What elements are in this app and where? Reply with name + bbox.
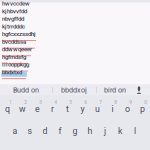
staticText: 8 — [114, 99, 117, 105]
staticText: 4 — [54, 99, 57, 105]
staticText: ddwwqeeer — [2, 46, 32, 53]
staticText: k — [118, 126, 122, 136]
staticText: r — [51, 104, 54, 114]
staticText: bbdxtxd — [2, 68, 22, 76]
staticText: 0 — [144, 99, 147, 105]
staticText: hgfmdsfg — [2, 53, 26, 60]
staticText: kjhbvvfdd — [2, 7, 27, 15]
button[interactable]: q — [0, 95, 15, 117]
staticText: f — [58, 126, 61, 136]
button[interactable]: t — [60, 95, 75, 117]
staticText: iiiooppkgg — [2, 61, 29, 68]
staticText: bird on — [104, 86, 126, 94]
button[interactable]: f — [52, 117, 67, 139]
staticText: i — [111, 104, 113, 114]
staticText: 6 — [84, 99, 87, 105]
staticText: j — [104, 126, 106, 136]
staticText: o — [125, 104, 130, 114]
button[interactable]: g — [67, 117, 82, 139]
staticText: Budd on — [13, 86, 39, 94]
button[interactable]: l — [127, 117, 142, 139]
button[interactable]: Budd on — [0, 84, 52, 95]
button[interactable]: w — [15, 95, 30, 117]
staticText: g — [72, 126, 77, 136]
staticText: 7 — [99, 99, 102, 105]
staticText: bvcddssa — [2, 38, 26, 45]
staticText: 1 — [9, 99, 12, 105]
button[interactable]: a — [7, 117, 22, 139]
button[interactable]: j — [97, 117, 112, 139]
staticText: 9 — [129, 99, 132, 105]
staticText: h — [87, 126, 92, 136]
button[interactable]: h — [82, 117, 97, 139]
button[interactable]: r — [45, 95, 60, 117]
staticText: nbvgffdd — [2, 15, 24, 22]
button[interactable]: bbddxoj — [52, 84, 96, 95]
button[interactable]: p — [135, 95, 150, 117]
button[interactable]: u — [90, 95, 105, 117]
button[interactable]: o — [120, 95, 135, 117]
staticText: 2 — [24, 99, 27, 105]
staticText: d — [42, 126, 47, 136]
staticText: q — [5, 104, 10, 114]
staticText: 5 — [69, 99, 72, 105]
button[interactable]: k — [112, 117, 127, 139]
button[interactable]: d — [37, 117, 52, 139]
staticText: 3 — [39, 99, 42, 105]
staticText: y — [80, 104, 84, 114]
staticText: l — [134, 126, 136, 136]
staticText: u — [95, 104, 100, 114]
button[interactable]: Voice input — [131, 84, 147, 95]
button[interactable]: s — [22, 117, 37, 139]
button[interactable]: e — [30, 95, 45, 117]
button[interactable]: bird on — [96, 84, 134, 95]
staticText: s — [27, 126, 32, 136]
staticText: e — [35, 104, 40, 114]
staticText: bbddxoj — [61, 86, 87, 94]
button[interactable]: y — [75, 95, 90, 117]
staticText: w — [19, 104, 26, 114]
button[interactable]: i — [105, 95, 120, 117]
staticText: t — [66, 104, 69, 114]
staticText: kjtrrdddc — [2, 23, 25, 30]
staticText: p — [140, 104, 145, 114]
staticText: a — [12, 126, 17, 136]
staticText: hwvccdew — [2, 0, 30, 7]
staticText: hgfcxxzssdhj — [2, 30, 36, 38]
